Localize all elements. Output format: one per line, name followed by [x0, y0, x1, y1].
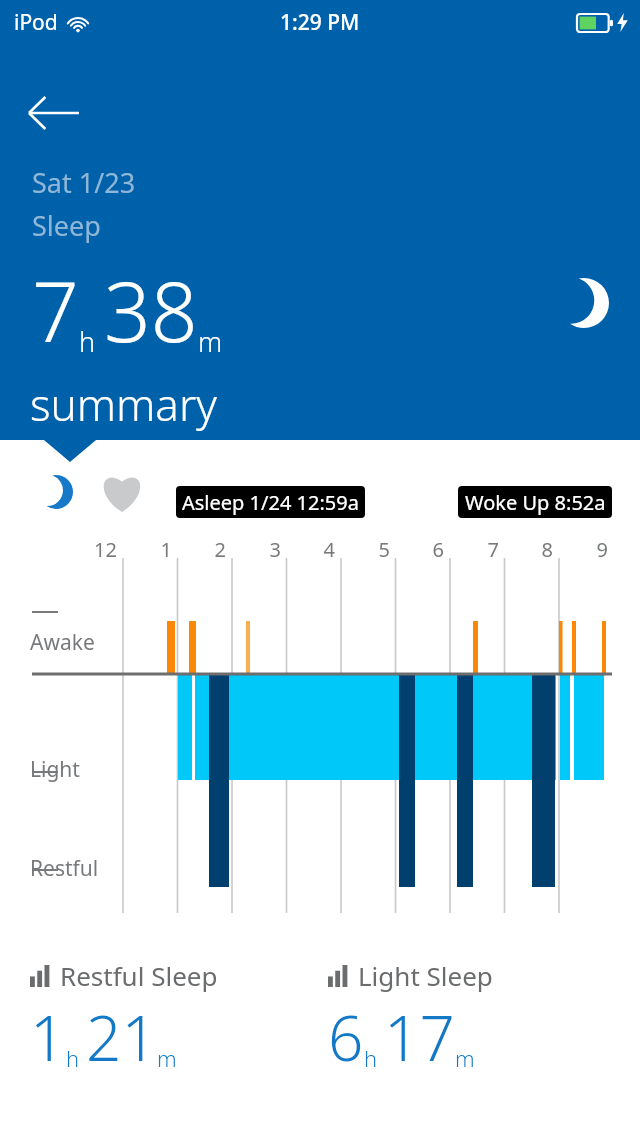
button[interactable]: Woke Up 8:52a [458, 486, 612, 518]
staticText: 3 [261, 536, 281, 563]
button[interactable]: Light Sleep [328, 958, 618, 1077]
staticText: 2 [206, 536, 226, 563]
other: Sleep [556, 272, 612, 334]
staticText: 1 [152, 536, 172, 563]
staticText: 1:29 PM [280, 8, 360, 37]
staticText: 6 [424, 536, 444, 563]
staticText: h [364, 1043, 378, 1073]
button[interactable]: Back [18, 82, 90, 144]
button[interactable]: Restful Sleep [30, 958, 320, 1077]
staticText: Light Sleep [358, 958, 493, 993]
button[interactable]: Sleep tab [32, 470, 80, 514]
staticText: 7 [479, 536, 499, 563]
staticText: 6 [328, 995, 364, 1079]
staticText: 7 [32, 254, 79, 366]
staticText: 17 [384, 995, 455, 1079]
staticText: h [66, 1043, 80, 1073]
staticText: 9 [588, 536, 608, 563]
staticText: h [79, 323, 96, 360]
staticText: Awake [30, 628, 95, 657]
staticText: Sleep [32, 207, 101, 244]
staticText: Light [30, 755, 80, 784]
staticText: 12a [85, 536, 117, 566]
button[interactable]: Heart rate tab [96, 470, 148, 514]
staticText: Asleep 1/24 12:59a [182, 489, 359, 516]
staticText: 4 [315, 536, 335, 563]
staticText: m [157, 1043, 177, 1073]
staticText: iPod [14, 8, 58, 37]
staticText: Sat 1/23 [32, 164, 136, 201]
staticText: m [455, 1043, 475, 1073]
staticText: 38 [104, 254, 198, 366]
staticText: summary [30, 374, 217, 434]
staticText: Restful [30, 854, 99, 883]
staticText: 5 [370, 536, 390, 563]
staticText: Woke Up 8:52a [465, 489, 606, 516]
staticText: Restful Sleep [60, 958, 218, 993]
button[interactable]: Asleep 1/24 12:59a [176, 486, 365, 518]
staticText: 21 [86, 995, 157, 1079]
staticText: 1 [30, 995, 66, 1079]
staticText: m [198, 323, 223, 360]
staticText: 8 [533, 536, 553, 563]
